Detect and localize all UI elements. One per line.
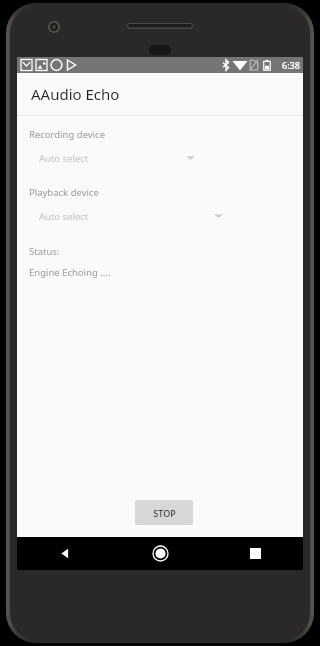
button[interactable]: Recording device selector xyxy=(29,147,201,169)
staticText: Engine Echoing .... xyxy=(29,266,111,279)
staticText: Auto select xyxy=(39,152,89,165)
staticText: AAudio Echo xyxy=(31,84,120,104)
staticText: Status: xyxy=(29,245,60,258)
button[interactable]: STOP xyxy=(135,500,193,525)
staticText: STOP xyxy=(153,507,176,519)
button[interactable]: Back xyxy=(17,537,113,570)
button[interactable]: Playback device selector xyxy=(29,205,229,227)
staticText: Auto select xyxy=(39,210,89,223)
staticText: Playback device xyxy=(29,186,99,199)
button[interactable]: Recent apps xyxy=(208,537,303,570)
button[interactable]: Home xyxy=(113,537,208,570)
staticText: 6:38 xyxy=(282,59,300,71)
staticText: Recording device xyxy=(29,128,105,141)
